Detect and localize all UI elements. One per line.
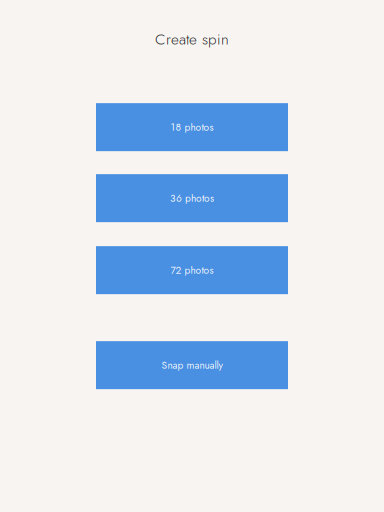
button[interactable]: 72 photos xyxy=(96,246,288,294)
staticText: Create spin xyxy=(155,28,229,50)
button[interactable]: Snap manually xyxy=(96,341,288,389)
staticText: 36 photos xyxy=(170,191,214,205)
staticText: Snap manually xyxy=(161,358,222,372)
staticText: 18 photos xyxy=(170,120,213,134)
staticText: 72 photos xyxy=(170,263,213,277)
button[interactable]: 36 photos xyxy=(96,174,288,222)
button[interactable]: 18 photos xyxy=(96,103,288,151)
